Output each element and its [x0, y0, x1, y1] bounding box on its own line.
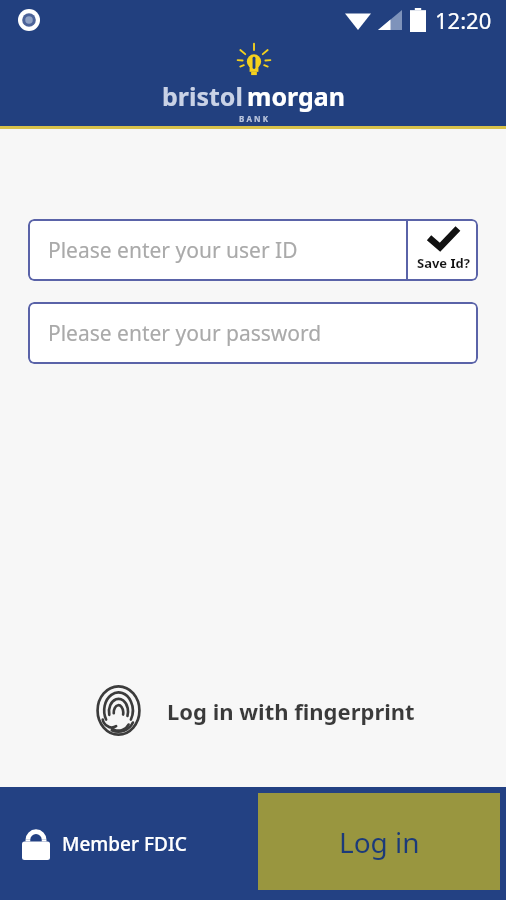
button[interactable]: Save Id? — [408, 219, 478, 281]
staticText: morgan — [247, 79, 345, 113]
button[interactable]: Log in with fingerprint — [0, 676, 506, 745]
button[interactable]: Member FDIC — [22, 828, 187, 860]
staticText: Save Id? — [417, 254, 470, 272]
staticText: Please enter your password — [48, 319, 322, 348]
other: Log in with fingerprint — [92, 684, 145, 737]
staticText: bristol — [162, 79, 243, 113]
button[interactable]: Please enter your user ID — [28, 219, 478, 281]
staticText: Log in — [339, 823, 420, 861]
staticText: B A N K — [239, 113, 268, 124]
button[interactable]: Log in — [258, 793, 500, 890]
staticText: Member FDIC — [62, 831, 187, 857]
staticText: Please enter your user ID — [48, 236, 298, 265]
staticText: Log in with fingerprint — [167, 696, 415, 726]
button[interactable]: Please enter your password — [28, 302, 478, 364]
staticText: 12:20 — [435, 5, 492, 35]
